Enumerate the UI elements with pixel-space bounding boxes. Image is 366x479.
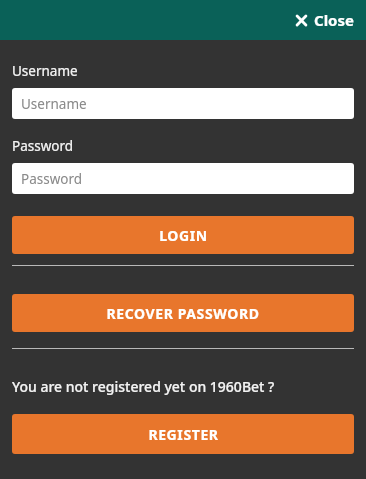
staticText: Username	[21, 95, 87, 113]
button[interactable]: REGISTER	[12, 414, 354, 454]
staticText: Username	[12, 62, 78, 80]
staticText: You are not registered yet on 1960Bet ?	[12, 377, 275, 396]
staticText: Password	[12, 137, 74, 155]
button[interactable]: Username	[12, 88, 354, 119]
button[interactable]: Close	[283, 4, 366, 36]
button[interactable]: RECOVER PASSWORD	[12, 294, 354, 332]
staticText: Close	[314, 10, 354, 30]
button[interactable]: LOGIN	[12, 216, 354, 254]
button[interactable]: Password	[12, 163, 354, 194]
staticText: REGISTER	[148, 425, 219, 444]
staticText: Password	[21, 170, 83, 188]
staticText: RECOVER PASSWORD	[106, 304, 260, 323]
staticText: LOGIN	[159, 226, 208, 245]
